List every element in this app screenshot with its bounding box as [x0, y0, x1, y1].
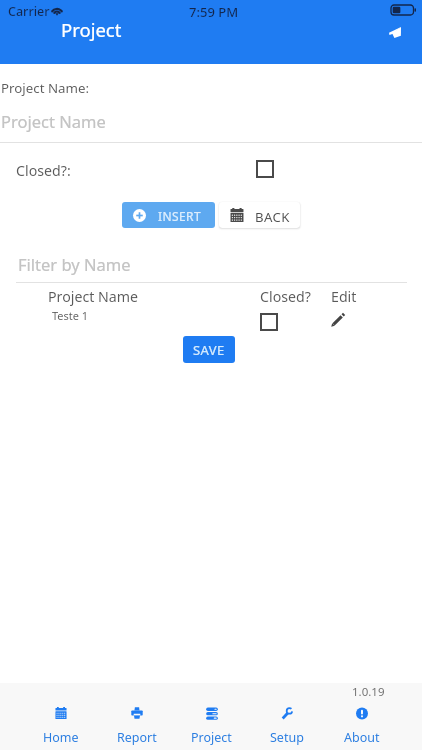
- staticText: Project Name:: [1, 79, 89, 97]
- staticText: About: [344, 729, 380, 746]
- button[interactable]: About: [324, 702, 399, 750]
- staticText: Home: [43, 729, 79, 746]
- button[interactable]: Closed checkbox: [256, 160, 274, 178]
- staticText: Project Name: [1, 110, 106, 132]
- staticText: INSERT: [158, 208, 201, 224]
- button[interactable]: Project: [174, 702, 249, 750]
- staticText: BACK: [255, 208, 290, 226]
- staticText: Carrier: [8, 3, 50, 20]
- button[interactable]: BACK: [219, 202, 300, 228]
- button[interactable]: INSERT: [122, 202, 215, 228]
- staticText: Report: [117, 729, 157, 746]
- staticText: 7:59 PM: [189, 3, 239, 21]
- staticText: Teste 1: [52, 308, 89, 323]
- staticText: Setup: [270, 729, 304, 746]
- button[interactable]: Teste 1: [0, 308, 422, 332]
- button[interactable]: SAVE: [183, 336, 235, 363]
- staticText: Closed?: [260, 287, 311, 306]
- staticText: 1.0.19: [352, 684, 385, 700]
- button[interactable]: Send: [376, 14, 413, 51]
- staticText: SAVE: [193, 341, 225, 359]
- button[interactable]: Home: [23, 702, 99, 750]
- staticText: Edit: [331, 287, 357, 306]
- staticText: Project: [61, 17, 122, 42]
- staticText: Filter by Name: [18, 253, 131, 275]
- staticText: Closed?:: [16, 161, 71, 180]
- staticText: Project Name: [48, 287, 139, 306]
- staticText: Project: [191, 729, 232, 746]
- button[interactable]: Report: [99, 702, 174, 750]
- button[interactable]: Setup: [249, 702, 324, 750]
